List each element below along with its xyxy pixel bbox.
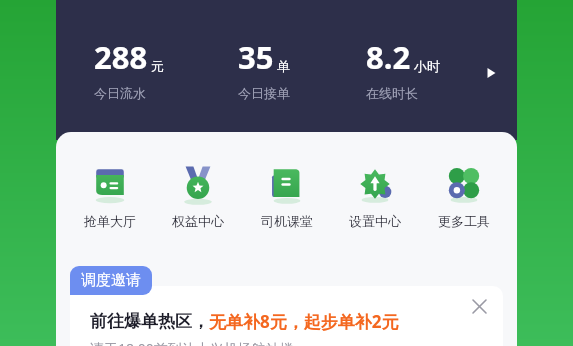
- staticText: 288: [94, 36, 148, 78]
- staticText: 今日流水: [94, 85, 146, 101]
- staticText: 司机课堂: [261, 213, 313, 229]
- staticText: 8.2: [366, 36, 411, 78]
- staticText: 设置中心: [349, 213, 401, 229]
- staticText: 无单补8元，起步单补2元: [209, 310, 399, 333]
- staticText: 权益中心: [172, 213, 224, 229]
- staticText: 35: [238, 36, 274, 78]
- staticText: 抢单大厅: [84, 213, 136, 229]
- staticText: 请于18:00前到达大兴机场航站楼: [90, 339, 294, 346]
- button[interactable]: 关闭: [467, 294, 491, 318]
- button[interactable]: 更多: [474, 56, 508, 90]
- staticText: 在线时长: [366, 85, 418, 101]
- button[interactable]: 权益中心: [163, 160, 233, 231]
- staticText: 前往爆单热区，: [90, 311, 209, 332]
- button[interactable]: 司机课堂: [252, 160, 322, 231]
- button[interactable]: 设置中心: [340, 160, 410, 231]
- button[interactable]: 调度邀请: [70, 266, 152, 295]
- staticText: 调度邀请: [81, 271, 141, 290]
- button[interactable]: 更多工具: [429, 160, 499, 231]
- staticText: 今日接单: [238, 85, 290, 101]
- staticText: 单: [277, 58, 290, 74]
- staticText: 小时: [414, 58, 440, 74]
- staticText: 更多工具: [438, 213, 490, 229]
- staticText: 元: [151, 58, 164, 74]
- button[interactable]: 抢单大厅: [75, 160, 145, 231]
- button[interactable]: 前往爆单热区，: [70, 286, 503, 346]
